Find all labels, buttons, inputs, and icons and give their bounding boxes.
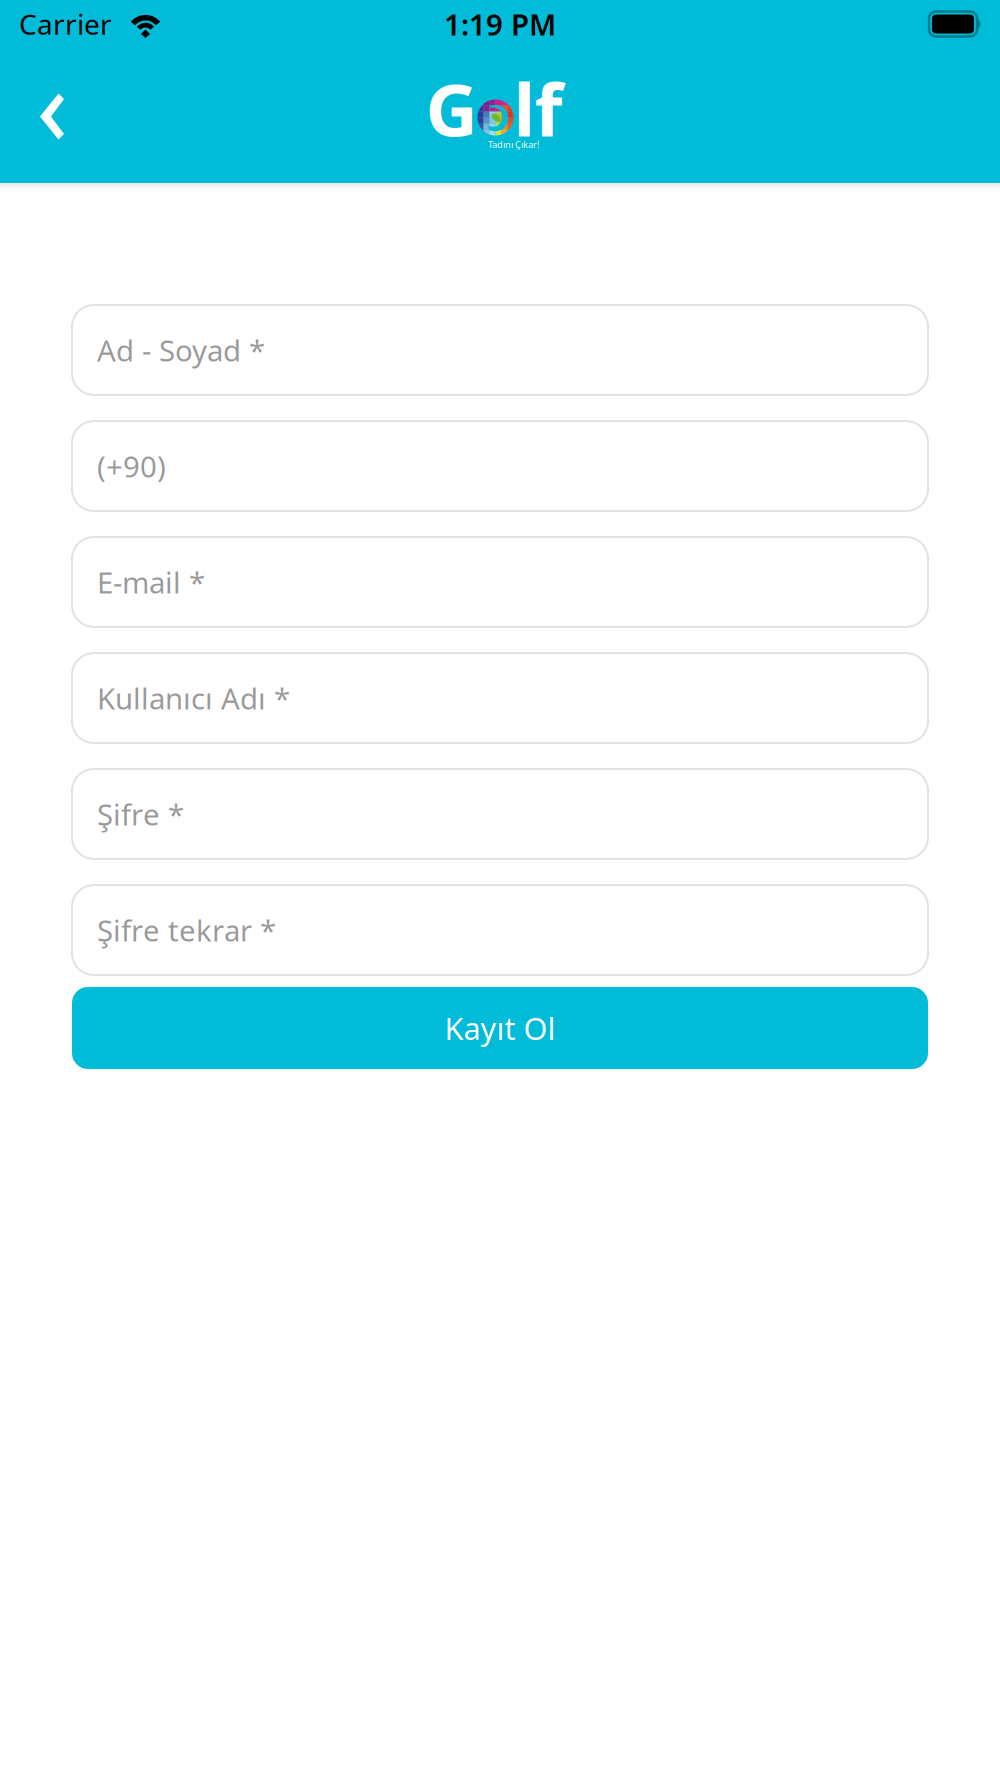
button[interactable]: E-mail *: [72, 537, 928, 627]
staticText: Kullanıcı Adı *: [97, 678, 290, 717]
staticText: lf: [513, 61, 562, 156]
staticText: E-mail *: [97, 562, 205, 601]
button[interactable]: Şifre tekrar *: [72, 885, 928, 975]
button[interactable]: Şifre *: [72, 769, 928, 859]
button[interactable]: Kullanıcı Adı *: [72, 653, 928, 743]
button[interactable]: Kayıt Ol: [72, 987, 928, 1069]
staticText: Carrier: [19, 5, 112, 43]
staticText: Şifre *: [97, 794, 184, 833]
staticText: Şifre tekrar *: [97, 910, 276, 949]
staticText: Ad - Soyad *: [97, 330, 265, 369]
staticText: G: [425, 61, 477, 156]
button[interactable]: Back: [0, 55, 96, 175]
button[interactable]: (+90): [72, 421, 928, 511]
staticText: Tadını Çıkar!: [488, 138, 540, 151]
staticText: (+90): [97, 446, 166, 485]
staticText: Kayıt Ol: [444, 1008, 555, 1048]
button[interactable]: Ad - Soyad *: [72, 305, 928, 395]
staticText: 1:19 PM: [444, 4, 556, 43]
